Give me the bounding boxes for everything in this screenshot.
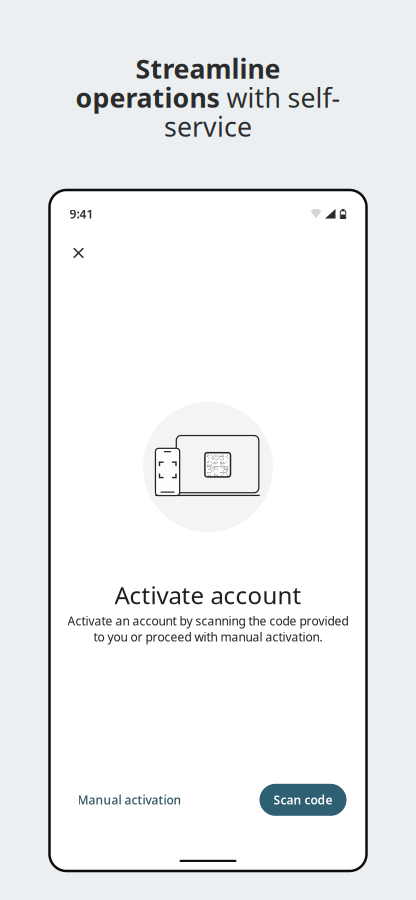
staticText: 9:41	[69, 206, 93, 222]
button[interactable]: Close	[65, 240, 91, 266]
staticText: Streamline	[135, 51, 280, 86]
staticText: Activate account	[114, 579, 301, 611]
button[interactable]: Manual activation	[73, 783, 185, 817]
staticText: Activate an account by scanning the code…	[67, 613, 348, 629]
button[interactable]: Scan code	[259, 784, 346, 816]
staticText: Manual activation	[77, 792, 181, 808]
staticText: operations with self-	[75, 80, 340, 115]
staticText: service	[164, 109, 252, 144]
staticText: Scan code	[273, 792, 332, 808]
staticText: to you or proceed with manual activation…	[93, 629, 322, 645]
